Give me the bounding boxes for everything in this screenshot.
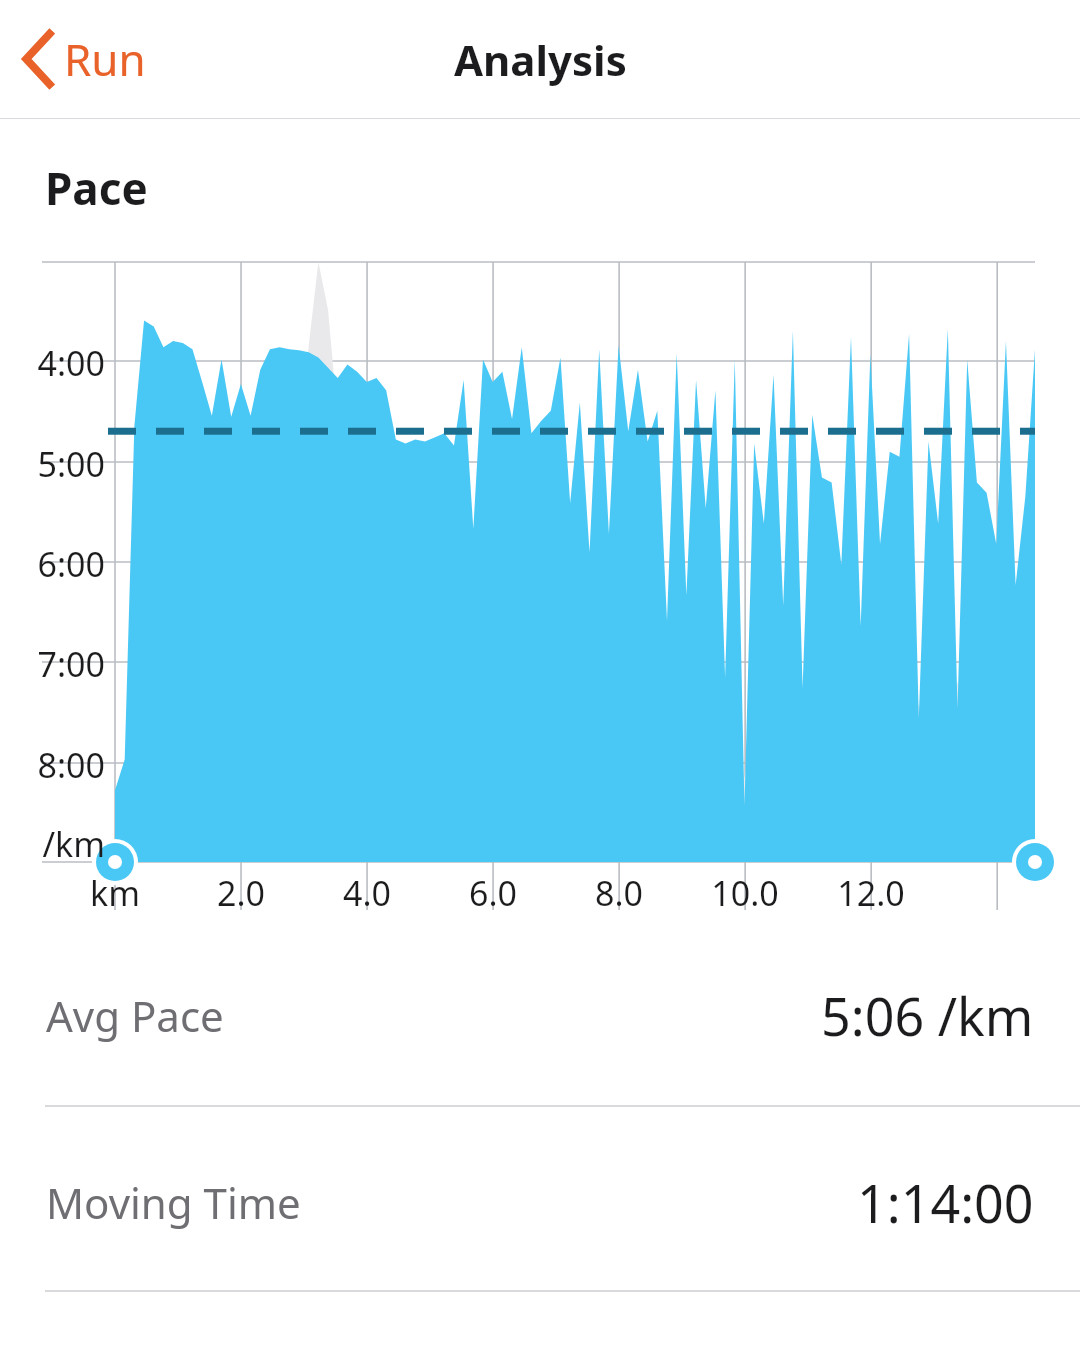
staticText: Pace bbox=[45, 158, 148, 218]
staticText: Analysis bbox=[454, 31, 627, 88]
staticText: /km bbox=[20, 821, 105, 867]
staticText: 8.0 bbox=[579, 870, 659, 916]
staticText: 6.0 bbox=[453, 870, 533, 916]
staticText: 1:14:00 bbox=[857, 1167, 1034, 1238]
staticText: 5:06 /km bbox=[821, 980, 1034, 1051]
staticText: 2.0 bbox=[201, 870, 281, 916]
button[interactable]: Avg Pace bbox=[0, 955, 1080, 1075]
staticText: 4.0 bbox=[327, 870, 407, 916]
other: Back bbox=[22, 31, 52, 87]
staticText: 4:00 bbox=[20, 340, 105, 386]
staticText: Avg Pace bbox=[46, 987, 224, 1044]
staticText: km bbox=[75, 870, 155, 916]
button[interactable]: Moving Time bbox=[0, 1142, 1080, 1262]
staticText: 5:00 bbox=[20, 441, 105, 487]
staticText: 10.0 bbox=[705, 870, 785, 916]
staticText: 12.0 bbox=[831, 870, 911, 916]
staticText: Run bbox=[64, 29, 146, 89]
staticText: Moving Time bbox=[46, 1174, 301, 1231]
staticText: 6:00 bbox=[20, 541, 105, 587]
button[interactable]: Back bbox=[0, 15, 166, 103]
staticText: 8:00 bbox=[20, 742, 105, 788]
staticText: 7:00 bbox=[20, 641, 105, 687]
